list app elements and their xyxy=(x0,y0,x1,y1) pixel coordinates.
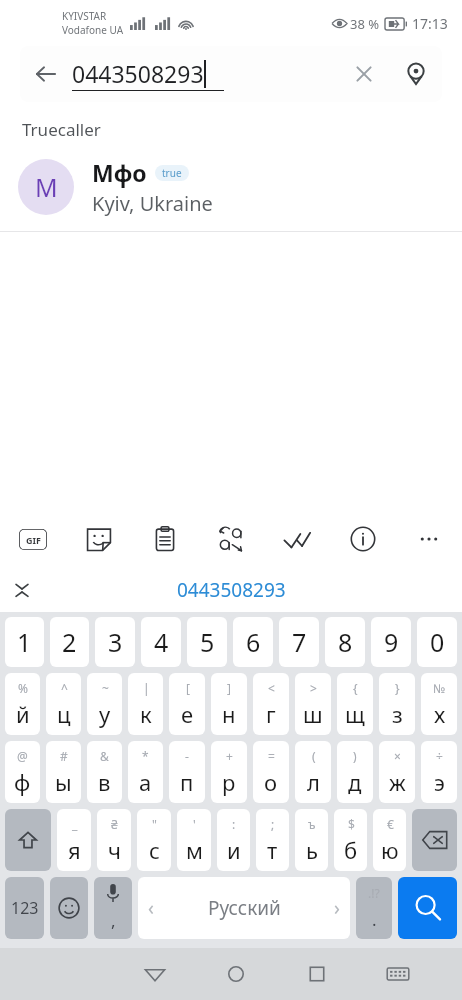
button[interactable]: ] xyxy=(211,673,247,735)
button[interactable]: Backspace xyxy=(412,809,457,871)
button[interactable]: _ xyxy=(57,809,91,871)
staticText: г xyxy=(266,699,276,729)
button[interactable]: Collapse xyxy=(0,568,44,612)
button[interactable]: { xyxy=(337,673,373,735)
button[interactable]: ‹ xyxy=(138,877,350,939)
staticText: ₴ xyxy=(111,816,118,832)
button[interactable]: Emoji xyxy=(50,877,88,939)
button[interactable]: @ xyxy=(5,741,40,803)
staticText: # xyxy=(60,748,68,764)
button[interactable]: Back xyxy=(20,46,442,102)
staticText: € xyxy=(387,816,394,832)
staticText: ^ xyxy=(61,680,68,696)
button[interactable]: 9 xyxy=(371,617,411,667)
staticText: т xyxy=(267,835,278,865)
button[interactable]: Back xyxy=(20,48,72,100)
button[interactable]: - xyxy=(169,741,205,803)
button[interactable]: = xyxy=(253,741,289,803)
staticText: ж xyxy=(389,767,406,797)
staticText: KYIVSTAR xyxy=(62,9,107,23)
button[interactable]: 6 xyxy=(233,617,273,667)
staticText: ~ xyxy=(102,680,109,696)
button[interactable]: Punctuation xyxy=(356,877,392,939)
button[interactable]: Clear xyxy=(338,48,390,100)
button[interactable]: ÷ xyxy=(421,741,457,803)
button[interactable]: 1 xyxy=(5,617,44,667)
button[interactable]: ) xyxy=(337,741,373,803)
button[interactable]: 3 xyxy=(95,617,135,667)
button[interactable]: Voice input xyxy=(94,877,132,939)
button[interactable]: ; xyxy=(256,809,289,871)
button[interactable]: 7 xyxy=(279,617,319,667)
button[interactable]: ^ xyxy=(46,673,81,735)
staticText: Vodafone UA xyxy=(62,23,124,37)
staticText: ( xyxy=(312,748,316,764)
button[interactable]: 4 xyxy=(141,617,181,667)
button[interactable]: Translate xyxy=(198,510,264,568)
staticText: р xyxy=(222,767,236,797)
button[interactable]: Home xyxy=(195,948,276,1000)
button[interactable]: : xyxy=(217,809,250,871)
staticText: Русский xyxy=(208,895,281,921)
staticText: 4 xyxy=(154,625,169,659)
button[interactable]: M xyxy=(0,157,462,231)
button[interactable]: Location xyxy=(390,48,442,100)
button[interactable]: % xyxy=(5,673,40,735)
button[interactable]: Back xyxy=(114,948,195,1000)
button[interactable]: Info xyxy=(330,510,396,568)
staticText: ы xyxy=(55,767,72,797)
button[interactable]: + xyxy=(211,741,247,803)
button[interactable]: GIF xyxy=(0,510,66,568)
button[interactable]: ( xyxy=(295,741,331,803)
staticText: = xyxy=(268,748,275,764)
staticText: ) xyxy=(353,748,357,764)
button[interactable]: 2 xyxy=(50,617,89,667)
button[interactable]: " xyxy=(137,809,171,871)
button[interactable]: & xyxy=(87,741,122,803)
button[interactable]: > xyxy=(295,673,331,735)
button[interactable]: Recents xyxy=(276,948,357,1000)
button[interactable]: 0 xyxy=(417,617,457,667)
staticText: б xyxy=(344,835,358,865)
staticText: Kyiv, Ukraine xyxy=(92,190,213,217)
staticText: ъ xyxy=(308,816,316,832)
button[interactable]: Shift xyxy=(5,809,51,871)
button[interactable]: Search xyxy=(398,877,457,939)
staticText: GIF xyxy=(26,534,41,546)
button[interactable]: [ xyxy=(169,673,205,735)
staticText: о xyxy=(264,767,278,797)
button[interactable]: 0443508293 xyxy=(165,571,298,609)
button[interactable]: * xyxy=(128,741,163,803)
button[interactable]: 5 xyxy=(187,617,227,667)
button[interactable]: Clipboard xyxy=(132,510,198,568)
button[interactable]: < xyxy=(253,673,289,735)
button[interactable]: Check xyxy=(264,510,330,568)
button[interactable]: | xyxy=(128,673,163,735)
button[interactable]: More xyxy=(396,510,462,568)
staticText: 0443508293 xyxy=(177,577,286,603)
button[interactable]: # xyxy=(46,741,81,803)
staticText: в xyxy=(98,767,111,797)
button[interactable]: Keyboard xyxy=(357,948,438,1000)
staticText: щ xyxy=(345,699,365,729)
button[interactable]: } xyxy=(379,673,415,735)
button[interactable]: Sticker xyxy=(66,510,132,568)
staticText: : xyxy=(232,816,236,832)
button[interactable]: № xyxy=(421,673,457,735)
button[interactable]: × xyxy=(379,741,415,803)
staticText: № xyxy=(433,680,446,696)
staticText: ю xyxy=(381,835,399,865)
button[interactable]: ' xyxy=(177,809,211,871)
button[interactable]: ъ xyxy=(295,809,328,871)
staticText: н xyxy=(222,699,236,729)
button[interactable]: 8 xyxy=(325,617,365,667)
staticText: @ xyxy=(17,748,28,764)
staticText: х xyxy=(434,699,446,729)
button[interactable]: ~ xyxy=(87,673,122,735)
staticText: } xyxy=(395,680,400,696)
button[interactable]: $ xyxy=(334,809,367,871)
button[interactable]: ₴ xyxy=(97,809,131,871)
button[interactable]: € xyxy=(373,809,406,871)
button[interactable]: 123 symbols xyxy=(5,877,44,939)
staticText: ь xyxy=(306,835,318,865)
